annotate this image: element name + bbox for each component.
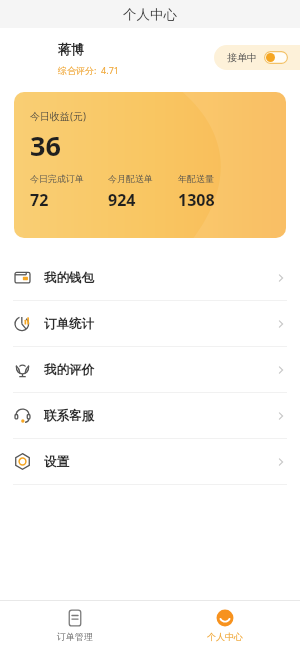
staticText: 个人中心 [207, 631, 243, 642]
staticText: 72 [30, 189, 49, 211]
staticText: 个人中心 [123, 6, 177, 23]
staticText: 今日完成订单 [30, 173, 84, 184]
button[interactable]: 个人中心 [150, 601, 300, 649]
staticText: 我的评价 [44, 362, 94, 378]
staticText: 综合评分: 4.71 [58, 64, 119, 76]
button[interactable]: 订单管理 [0, 601, 150, 649]
staticText: 蒋博 [58, 41, 84, 57]
staticText: 年配送量 [178, 173, 214, 184]
staticText: 36 [30, 127, 61, 164]
staticText: 1308 [178, 189, 215, 211]
button[interactable]: 设置 [0, 439, 300, 484]
button[interactable]: 我的评价 [0, 347, 300, 392]
button[interactable]: 我的钱包 [0, 255, 300, 300]
staticText: 接单中 [227, 51, 257, 64]
staticText: 订单统计 [44, 316, 94, 332]
staticText: 我的钱包 [44, 270, 94, 286]
staticText: 今月配送单 [108, 173, 153, 184]
staticText: 联系客服 [44, 408, 94, 424]
staticText: 订单管理 [57, 631, 93, 642]
button[interactable]: 订单统计 [0, 301, 300, 346]
staticText: 设置 [44, 454, 69, 470]
staticText: 今日收益(元) [30, 109, 86, 123]
staticText: 924 [108, 189, 136, 211]
button[interactable]: 联系客服 [0, 393, 300, 438]
button[interactable]: 接单中 [214, 45, 300, 70]
